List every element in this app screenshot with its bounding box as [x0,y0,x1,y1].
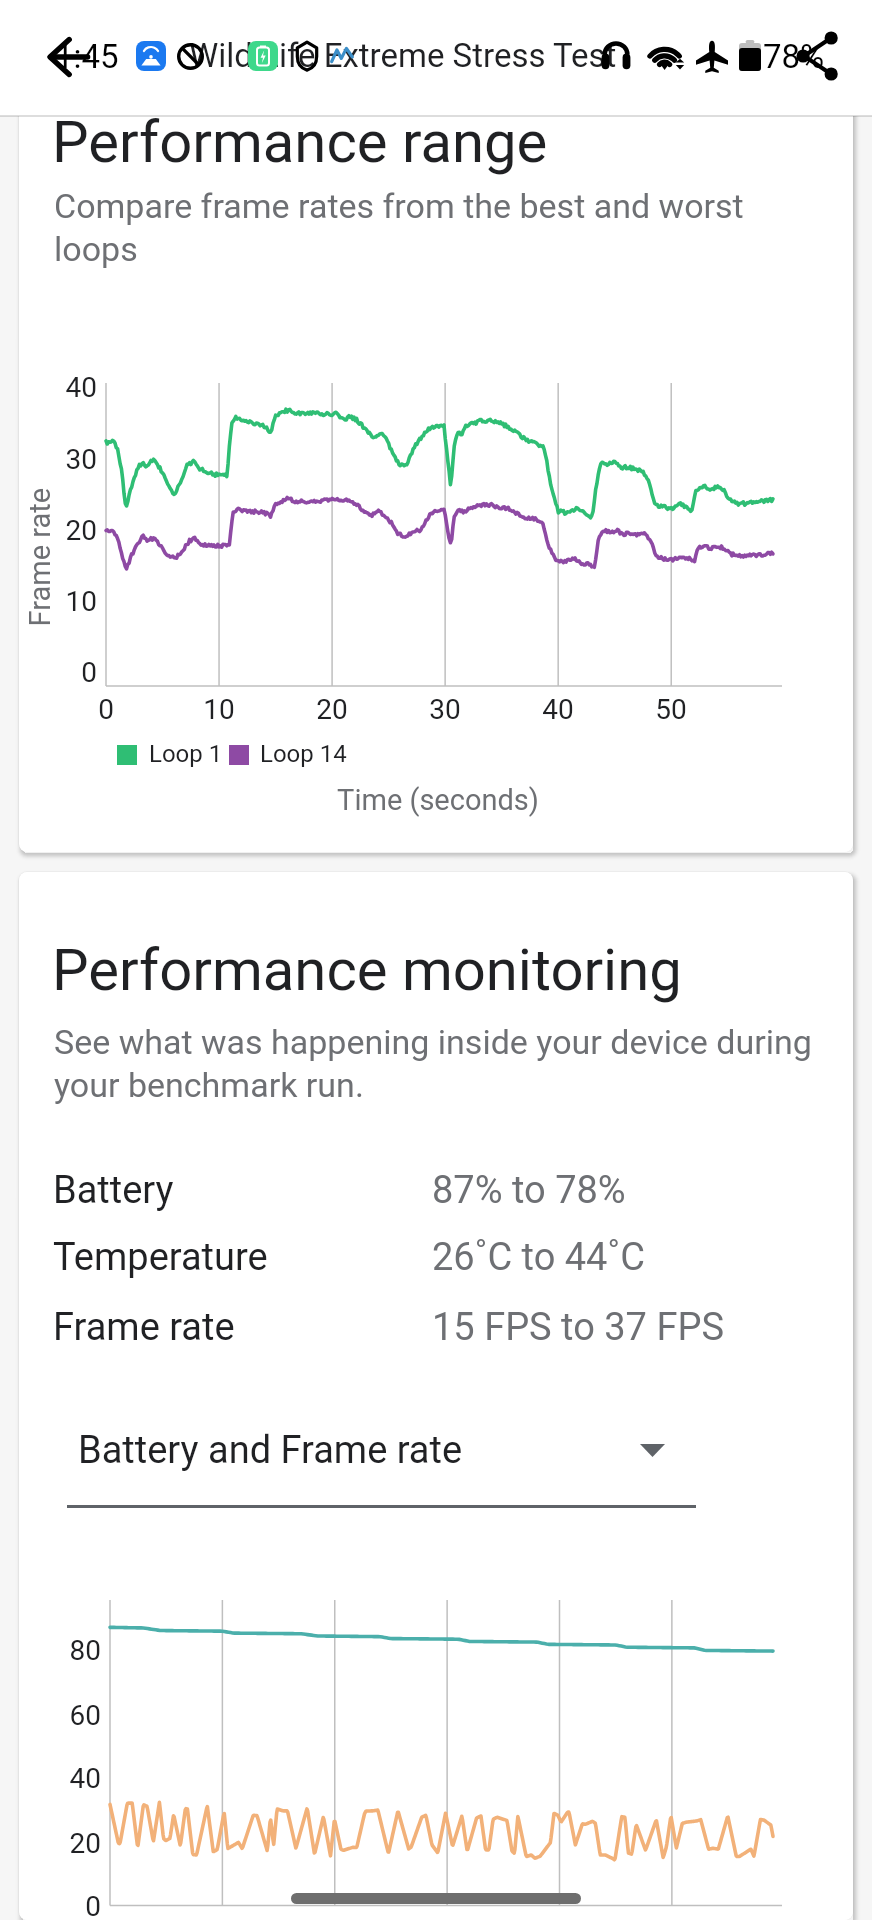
staticText: Frame rate [22,487,56,626]
staticText: Frame rate [53,1305,432,1350]
staticText: Time (seconds) [21,783,853,817]
staticText: 10 [19,585,97,618]
staticText: 10 [189,693,249,726]
staticText: 60 [19,1699,101,1732]
staticText: 78% [763,37,825,76]
staticText: 30 [415,693,475,726]
staticText: See what was happening inside your devic… [54,1022,853,1105]
staticText: 0 [19,656,97,689]
staticText: Compare frame rates from the best and wo… [54,186,754,269]
staticText: 15 FPS to 37 FPS [432,1305,724,1350]
staticText: Battery and Frame rate [78,1428,671,1473]
staticText: 80 [19,1634,101,1667]
staticText: Loop 14 [260,740,347,768]
staticText: 40 [19,371,97,404]
staticText: Performance monitoring [52,936,682,1004]
staticText: 40 [528,693,588,726]
staticText: 87% to 78% [432,1168,626,1213]
button[interactable]: Back [42,31,94,83]
staticText: 0 [76,693,136,726]
staticText: Wild Life Extreme Stress Test [189,36,617,75]
button[interactable]: Battery and Frame rate [66,1408,696,1492]
staticText: Performance range [52,108,548,176]
staticText: 0 [19,1890,101,1920]
staticText: 40 [19,1762,101,1795]
button[interactable]: Share [790,30,842,82]
staticText: 50 [641,693,701,726]
staticText: Temperature [53,1235,432,1280]
staticText: 1:45 [55,37,119,76]
staticText: 20 [19,514,97,547]
staticText: 30 [19,443,97,476]
staticText: Battery [53,1168,432,1213]
staticText: Loop 1 [149,740,223,768]
staticText: 20 [19,1827,101,1860]
staticText: 20 [302,693,362,726]
staticText: 26˚C to 44˚C [432,1235,645,1280]
